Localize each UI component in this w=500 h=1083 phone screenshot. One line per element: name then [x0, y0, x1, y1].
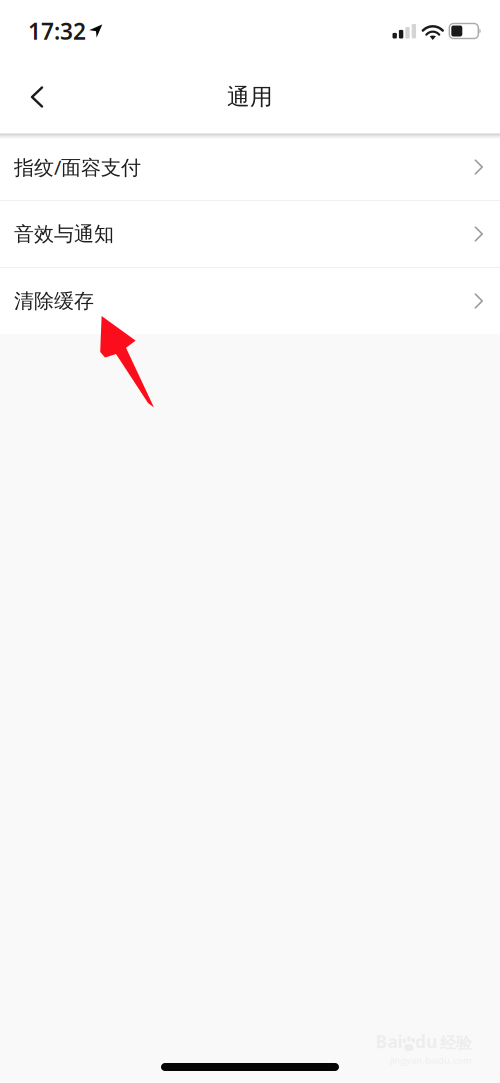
staticText: 清除缓存 — [14, 289, 94, 313]
staticText: Bai — [375, 1030, 402, 1053]
button[interactable]: 返回 — [15, 75, 59, 119]
staticText: du — [415, 1030, 437, 1053]
button[interactable]: 音效与通知 — [0, 201, 500, 267]
staticText: jingyan.baidu.com — [390, 1054, 472, 1066]
staticText: 指纹/面容支付 — [14, 154, 141, 180]
staticText: 音效与通知 — [14, 222, 114, 246]
staticText: 通用 — [227, 83, 273, 111]
staticText: 经验 — [440, 1033, 472, 1053]
button[interactable]: 指纹/面容支付 — [0, 134, 500, 200]
button[interactable]: 清除缓存 — [0, 268, 500, 334]
staticText: 17:32 — [28, 16, 86, 46]
